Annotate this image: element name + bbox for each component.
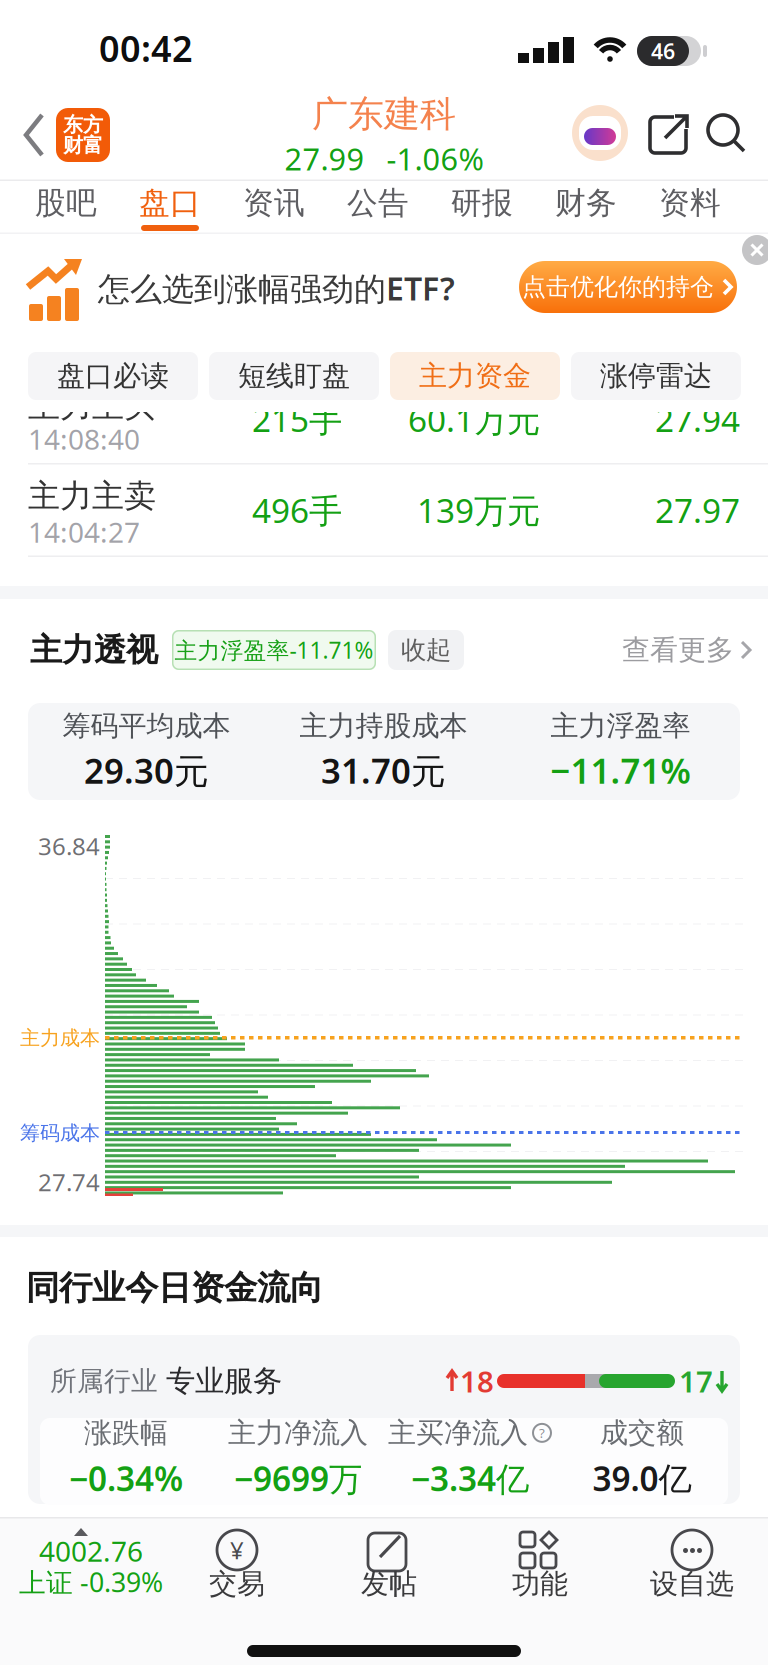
staticText: 主买净流入 <box>388 1416 528 1450</box>
staticText: 60.1万元 <box>408 397 540 441</box>
staticText: 27.74 <box>38 1166 100 1198</box>
staticText: −9699万 <box>234 1456 362 1500</box>
staticText: 公告 <box>347 184 409 222</box>
staticText: 盘口 <box>139 184 201 222</box>
staticText: 涨停雷达 <box>600 359 712 393</box>
staticText: 27.94 <box>655 397 740 441</box>
staticText: 所属行业 <box>50 1365 158 1397</box>
staticText: 同行业今日资金流向 <box>26 1267 323 1308</box>
staticText: 主力主买 <box>28 386 156 426</box>
staticText: ¥ <box>230 1534 244 1566</box>
staticText: 主力浮盈率 <box>550 709 690 743</box>
staticText: 215手 <box>252 397 342 441</box>
button[interactable]: 设自选 <box>621 1517 763 1607</box>
button[interactable]: 短线盯盘 <box>209 352 379 400</box>
staticText: 股吧 <box>35 184 97 222</box>
staticText: 496手 <box>252 488 342 532</box>
staticText: 发帖 <box>361 1567 417 1601</box>
button[interactable]: 涨停雷达 <box>571 352 741 400</box>
staticText: 专业服务 <box>166 1363 282 1399</box>
button[interactable] <box>650 111 692 155</box>
staticText: 资料 <box>659 184 721 222</box>
button[interactable]: 资料 <box>638 178 742 228</box>
staticText: 设自选 <box>650 1567 734 1601</box>
button[interactable]: 主力资金 <box>390 352 560 400</box>
staticText: 成交额 <box>600 1416 684 1450</box>
staticText: 财富 <box>63 133 103 158</box>
staticText: 17 <box>679 1361 713 1400</box>
staticText: 主力主卖 <box>28 476 156 516</box>
staticText: 主力透视 <box>30 630 158 670</box>
button[interactable]: 公告 <box>326 178 430 228</box>
staticText: 39.0亿 <box>592 1456 691 1500</box>
button[interactable] <box>572 105 628 161</box>
staticText: −0.34% <box>69 1456 183 1500</box>
staticText: 00:42 <box>99 24 193 72</box>
staticText: 交易 <box>209 1567 265 1601</box>
button[interactable]: 盘口必读 <box>28 352 198 400</box>
staticText: 14:08:40 <box>28 420 140 458</box>
staticText: 主力浮盈率-11.71% <box>174 635 373 665</box>
button[interactable]: 东方 <box>56 108 110 162</box>
button[interactable]: 发帖 <box>318 1517 460 1607</box>
staticText: 4002.76 <box>39 1532 143 1570</box>
button[interactable]: 财务 <box>534 178 638 228</box>
staticText: 点击优化你的持仓 <box>522 272 714 302</box>
staticText: 主力净流入 <box>228 1416 368 1450</box>
staticText: 18 <box>460 1361 494 1400</box>
staticText: 筹码成本 <box>20 1121 100 1145</box>
staticText: 14:04:27 <box>28 513 140 551</box>
staticText: 短线盯盘 <box>238 359 350 393</box>
staticText: 筹码平均成本 <box>62 709 230 743</box>
button[interactable] <box>742 235 768 265</box>
staticText: 盘口必读 <box>57 359 169 393</box>
button[interactable]: 查看更多 <box>622 628 752 672</box>
button[interactable]: ¥ <box>166 1517 308 1607</box>
button[interactable]: 点击优化你的持仓 <box>519 261 737 313</box>
staticText: ? <box>539 1424 545 1442</box>
staticText: 研报 <box>451 184 513 222</box>
staticText: 29.30元 <box>84 747 209 793</box>
staticText: 主力成本 <box>20 1026 100 1050</box>
staticText: 查看更多 <box>622 633 734 667</box>
staticText: 上证 -0.39% <box>19 1564 163 1600</box>
staticText: 东方 <box>63 112 103 137</box>
button[interactable]: 收起 <box>388 630 464 670</box>
staticText: 收起 <box>401 634 451 665</box>
staticText: -1.06% <box>386 138 483 179</box>
staticText: 怎么选到涨幅强劲的ETF? <box>98 267 455 309</box>
button[interactable]: 4002.76 <box>10 1517 152 1607</box>
button[interactable]: 股吧 <box>14 178 118 228</box>
staticText: 27.97 <box>655 488 740 532</box>
staticText: −3.34亿 <box>411 1456 529 1500</box>
staticText: 27.99 <box>284 138 364 179</box>
button[interactable]: 资讯 <box>222 178 326 228</box>
button[interactable]: 盘口 <box>118 178 222 228</box>
staticText: 主力持股成本 <box>299 709 467 743</box>
button[interactable] <box>708 115 746 153</box>
staticText: 资讯 <box>243 184 305 222</box>
button[interactable]: 功能 <box>469 1517 611 1607</box>
staticText: 139万元 <box>417 488 540 532</box>
staticText: 涨跌幅 <box>84 1416 168 1450</box>
staticText: 广东建科 <box>312 92 456 136</box>
staticText: −11.71% <box>550 747 690 793</box>
staticText: 财务 <box>555 184 617 222</box>
button[interactable]: 研报 <box>430 178 534 228</box>
staticText: 36.84 <box>38 830 100 862</box>
staticText: 功能 <box>512 1567 568 1601</box>
staticText: 主力资金 <box>419 359 531 393</box>
staticText: 31.70元 <box>321 747 446 793</box>
staticText: 46 <box>651 37 675 65</box>
